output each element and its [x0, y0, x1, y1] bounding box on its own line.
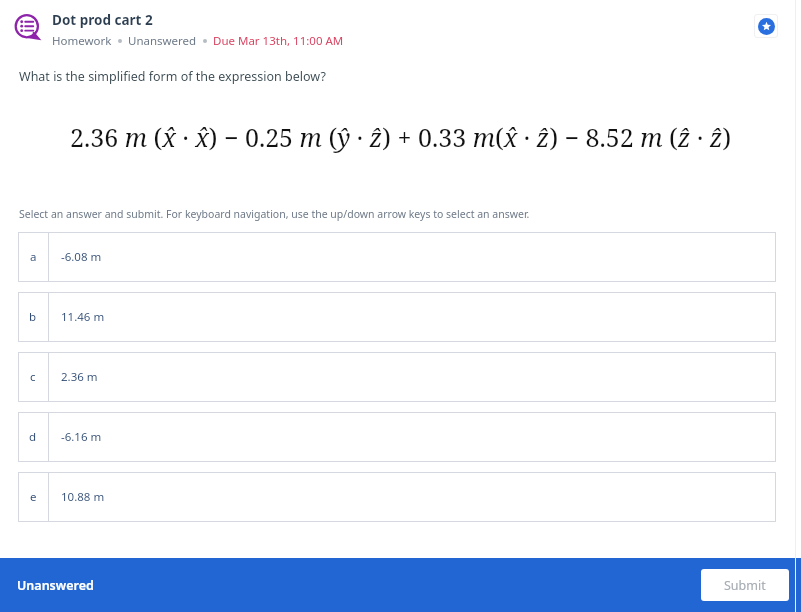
staticText: Unanswered [128, 33, 197, 49]
button[interactable]: d [18, 412, 776, 462]
staticText: e [30, 489, 37, 505]
staticText: -6.08 m [61, 249, 102, 265]
other: Assignment type [13, 13, 43, 43]
staticText: Unanswered [17, 577, 94, 594]
staticText: What is the simplified form of the expre… [19, 68, 326, 85]
staticText: Dot prod cart 2 [52, 11, 153, 29]
staticText: Due Mar 13th, 11:00 AM [213, 33, 344, 49]
staticText: 11.46 m [61, 309, 105, 325]
button[interactable]: Submit [701, 569, 789, 601]
staticText: Homework [52, 33, 112, 49]
staticText: d [29, 429, 37, 445]
button[interactable]: b [18, 292, 776, 342]
staticText: b [29, 309, 37, 325]
button[interactable]: c [18, 352, 776, 402]
staticText: -6.16 m [61, 429, 102, 445]
staticText: c [30, 369, 36, 385]
staticText: 10.88 m [61, 489, 105, 505]
button[interactable]: a [18, 232, 776, 282]
staticText: 2.36 m [61, 369, 98, 385]
staticText: Submit [724, 577, 766, 594]
staticText: Select an answer and submit. For keyboar… [19, 207, 530, 221]
staticText: 2.36 m (x̂ · x̂) − 0.25 m (ŷ · ẑ) + 0.… [70, 120, 732, 154]
button[interactable]: e [18, 472, 776, 522]
button[interactable]: Favorite [754, 14, 778, 38]
staticText: a [30, 249, 37, 265]
